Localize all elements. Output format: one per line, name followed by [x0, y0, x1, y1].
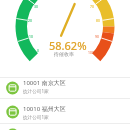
button[interactable]: 10001 南京大区: [0, 78, 130, 98]
staticText: 统计公司1家: [23, 88, 49, 94]
staticText: 30: [34, 4, 38, 9]
staticText: 10001 南京大区: [23, 79, 66, 87]
staticText: 10010 福州大区: [23, 105, 66, 113]
staticText: 90: [95, 34, 99, 39]
button[interactable]: 10010 福州大区: [0, 99, 130, 123]
staticText: 待催收率: [54, 51, 74, 57]
staticText: 0: [37, 48, 39, 53]
staticText: 统计公司1家: [23, 114, 49, 120]
staticText: 80: [96, 18, 100, 23]
staticText: 100: [88, 50, 94, 55]
staticText: 58.62%: [49, 38, 87, 53]
staticText: 10: [29, 34, 33, 39]
staticText: 20: [28, 18, 32, 23]
staticText: 70: [90, 4, 94, 9]
